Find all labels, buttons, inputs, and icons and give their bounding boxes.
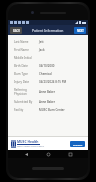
- staticText: MUSC Health: [17, 139, 39, 143]
- button[interactable]: Birth Date: [12, 62, 84, 70]
- button[interactable]: Referring Physician: [12, 86, 84, 98]
- button[interactable]: Home: [44, 150, 52, 158]
- staticText: Anne Baker: [39, 100, 55, 104]
- staticText: Burn Type: [14, 72, 28, 76]
- staticText: Birth Date: [14, 64, 28, 68]
- staticText: BACK: [13, 29, 20, 33]
- staticText: 04/10/2000: [39, 64, 55, 68]
- staticText: Referring Physician: [14, 88, 27, 96]
- staticText: Facility: [14, 108, 24, 112]
- button[interactable]: Facility: [12, 106, 84, 114]
- staticText: 04/23/2024 8:15 PM: [39, 80, 67, 84]
- staticText: Middle Initial: [14, 56, 32, 60]
- staticText: Chemical: [39, 72, 52, 76]
- button[interactable]: Middle Initial: [12, 54, 84, 62]
- button[interactable]: Injury Date: [12, 78, 84, 86]
- button[interactable]: Submit: [70, 141, 85, 147]
- staticText: Injury Date: [14, 80, 30, 84]
- staticText: Jack: [39, 48, 45, 52]
- staticText: SUBMIT: [73, 143, 83, 146]
- staticText: NEXT: [77, 29, 84, 33]
- staticText: Last Name: [14, 40, 29, 44]
- button[interactable]: First Name: [12, 46, 84, 54]
- staticText: First Name: [14, 48, 29, 52]
- button[interactable]: Recent apps: [66, 150, 74, 158]
- staticText: Submitted By: [14, 100, 33, 104]
- button[interactable]: Burn Type: [12, 70, 84, 78]
- button[interactable]: Back: [10, 27, 22, 34]
- button[interactable]: Last Name: [12, 38, 84, 46]
- staticText: MUSC Burn Center: [39, 108, 65, 112]
- button[interactable]: Submitted By: [12, 98, 84, 106]
- button[interactable]: Back: [22, 150, 30, 158]
- staticText: Anne Baker: [39, 90, 55, 94]
- staticText: MEDICAL UNIVERSITY of SOUTH CAROLINA: [17, 146, 45, 148]
- staticText: Patient Information: [32, 28, 64, 33]
- button[interactable]: Next: [74, 27, 86, 34]
- staticText: Jett: [39, 40, 44, 44]
